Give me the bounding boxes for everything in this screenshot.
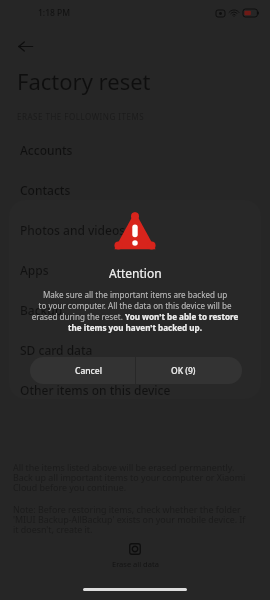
button[interactable]: SD card data — [0, 330, 270, 370]
staticText: Accounts — [20, 142, 73, 158]
staticText: SD card data — [20, 342, 93, 358]
staticText: 1:18 PM — [38, 7, 71, 19]
staticText: Contacts — [20, 182, 71, 198]
button[interactable]: OK (9) — [136, 357, 242, 384]
button[interactable]: Apps — [0, 250, 270, 290]
button[interactable]: Back — [12, 33, 38, 59]
button[interactable] — [9, 200, 261, 399]
button[interactable]: Backup — [0, 290, 270, 330]
staticText: ERASE THE FOLLOWING ITEMS — [17, 111, 145, 122]
staticText: Erase all data — [112, 559, 159, 569]
button[interactable]: Cancel — [30, 357, 135, 384]
staticText: Factory reset — [17, 66, 151, 96]
staticText: Attention — [109, 265, 162, 281]
staticText: Other items on this device — [20, 382, 171, 398]
staticText: Apps — [20, 262, 49, 278]
staticText: Photos and videos — [20, 222, 126, 238]
staticText: Backup — [20, 302, 63, 318]
button[interactable]: Photos and videos — [0, 210, 270, 250]
staticText: Cancel — [75, 365, 102, 377]
button[interactable]: Other items on this device — [0, 370, 270, 410]
staticText: OK (9) — [171, 365, 196, 377]
staticText: Make sure all the important items are ba… — [12, 289, 258, 333]
